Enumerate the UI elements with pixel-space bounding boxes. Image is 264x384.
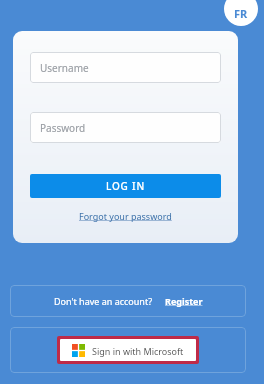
staticText: Register — [165, 295, 203, 307]
button[interactable]: Forgot your password — [79, 210, 172, 222]
button[interactable]: Sign in with Microsoft — [60, 339, 196, 361]
staticText: LOG IN — [106, 179, 145, 193]
button[interactable]: Username — [30, 52, 221, 83]
staticText: FR — [234, 6, 248, 21]
button[interactable]: LOG IN — [30, 174, 221, 198]
button[interactable]: Password — [30, 112, 221, 143]
staticText: Username — [40, 61, 89, 75]
button[interactable]: Language FR — [224, 0, 258, 26]
staticText: Forgot your password — [79, 210, 172, 222]
staticText: Password — [40, 121, 86, 135]
button[interactable]: Don't have an account? — [10, 285, 246, 317]
staticText: Sign in with Microsoft — [92, 345, 184, 357]
staticText: Don't have an account? — [54, 295, 153, 307]
